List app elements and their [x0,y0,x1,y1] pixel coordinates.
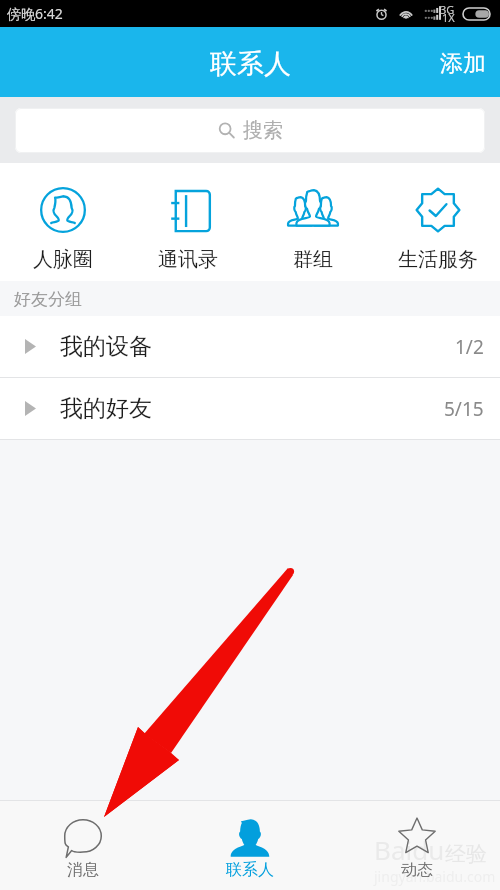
button[interactable]: 我的好友 [0,378,500,439]
staticText: 好友分组 [14,289,82,310]
other: Battery [462,7,491,21]
staticText: 消息 [67,860,99,880]
button[interactable]: 群组 [250,163,375,281]
button[interactable]: 消息 [0,801,166,890]
staticText: 我的好友 [60,394,152,423]
staticText: 群组 [293,247,333,272]
button[interactable]: 联系人 [166,801,333,890]
button[interactable]: 添加 [426,27,500,97]
staticText: 动态 [401,860,433,880]
other: Alarm [375,5,388,22]
staticText: 3G [440,2,455,17]
staticText: 联系人 [226,860,274,880]
button[interactable]: 生活服务 [375,163,500,281]
staticText: 1/2 [455,334,484,360]
button[interactable]: 通讯录 [125,163,250,281]
staticText: 傍晚6:42 [7,4,63,23]
staticText: 经验 [445,841,487,867]
staticText: 1X [442,10,455,25]
staticText: jingyan.baidu.com [374,867,496,886]
button[interactable]: 人脉圈 [0,163,125,281]
staticText: 添加 [440,49,486,78]
button[interactable]: 我的设备 [0,316,500,377]
staticText: Baidu [374,832,445,867]
staticText: 通讯录 [158,247,218,272]
staticText: 人脉圈 [33,247,93,272]
staticText: 生活服务 [398,247,478,272]
other: Search [218,122,235,139]
button[interactable]: 动态 [333,801,500,890]
staticText: 联系人 [210,47,291,81]
staticText: 我的设备 [60,332,152,361]
other: Wi-Fi [399,5,413,22]
staticText: 搜索 [243,118,283,143]
button[interactable]: Search [15,108,485,153]
staticText: 5/15 [444,396,484,422]
